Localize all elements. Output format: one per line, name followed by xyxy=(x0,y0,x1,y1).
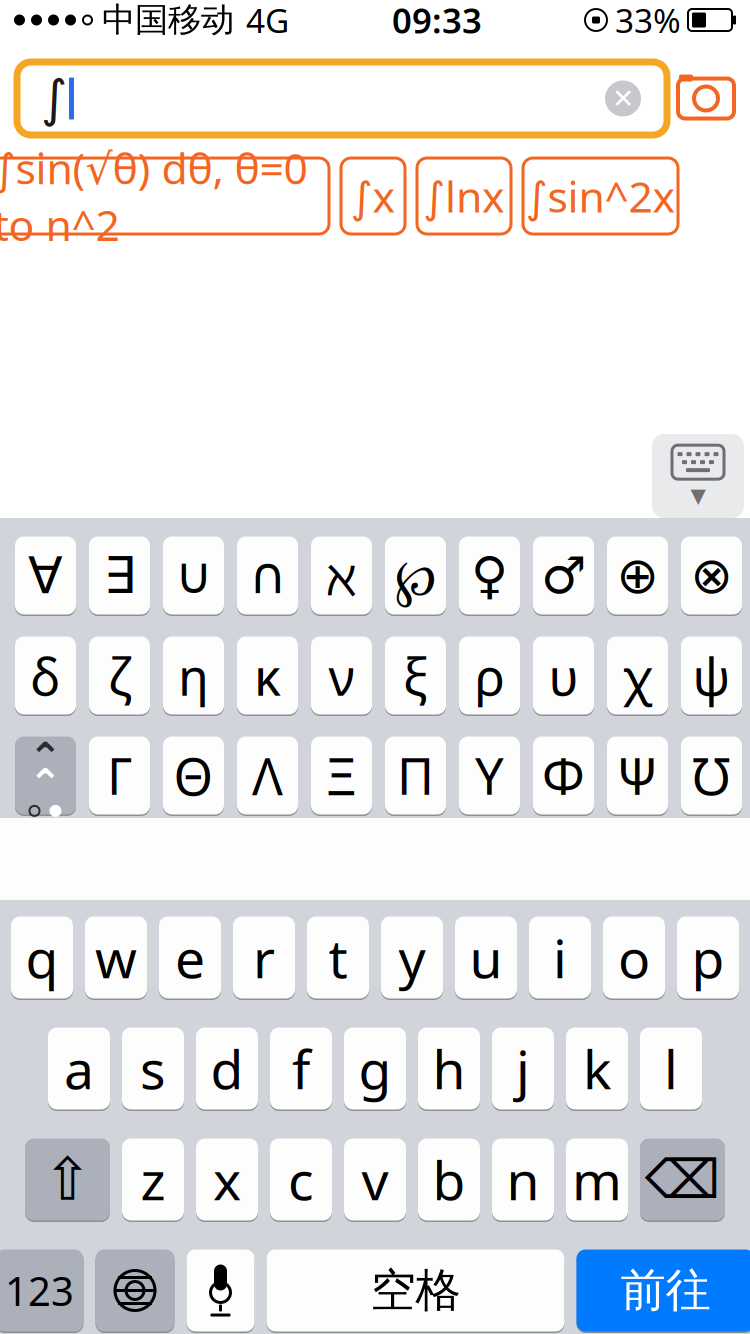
button[interactable]: q xyxy=(11,915,73,1000)
staticText: ∫sin^2x xyxy=(525,168,675,224)
button[interactable]: m xyxy=(566,1137,628,1222)
button[interactable]: Ʊ xyxy=(681,735,742,816)
button[interactable]: b xyxy=(418,1137,480,1222)
button[interactable]: ψ xyxy=(681,635,742,716)
button[interactable]: Φ xyxy=(533,735,594,816)
button[interactable]: Delete xyxy=(640,1137,725,1222)
button[interactable]: Ψ xyxy=(607,735,668,816)
button[interactable]: ∫lnx xyxy=(417,158,511,234)
button[interactable]: κ xyxy=(237,635,298,716)
button[interactable]: ξ xyxy=(385,635,446,716)
staticText: n xyxy=(506,1144,539,1215)
staticText: Υ xyxy=(475,742,504,809)
button[interactable]: More symbols xyxy=(15,735,76,816)
staticText: 33% xyxy=(615,0,681,42)
button[interactable]: u xyxy=(455,915,517,1000)
button[interactable]: ∫ xyxy=(17,62,667,135)
button[interactable]: f xyxy=(270,1026,332,1111)
staticText: r xyxy=(253,922,275,993)
button[interactable]: k xyxy=(566,1026,628,1111)
button[interactable]: ∪ xyxy=(163,535,224,616)
button[interactable]: p xyxy=(677,915,739,1000)
staticText: Θ xyxy=(173,742,213,809)
button[interactable]: d xyxy=(196,1026,258,1111)
button[interactable]: Π xyxy=(385,735,446,816)
staticText: c xyxy=(288,1144,314,1215)
staticText: ⌃ xyxy=(28,760,62,806)
button[interactable]: s xyxy=(122,1026,184,1111)
button[interactable]: j xyxy=(492,1026,554,1111)
button[interactable]: 前往 xyxy=(576,1248,750,1333)
staticText: l xyxy=(664,1033,678,1104)
button[interactable]: ♀ xyxy=(459,535,520,616)
button[interactable]: i xyxy=(529,915,591,1000)
button[interactable]: ∃ xyxy=(89,535,150,616)
button[interactable]: z xyxy=(122,1137,184,1222)
button[interactable]: ∀ xyxy=(15,535,76,616)
staticText: Ψ xyxy=(616,742,658,809)
button[interactable]: o xyxy=(603,915,665,1000)
button[interactable]: ⊕ xyxy=(607,535,668,616)
staticText: ∀ xyxy=(28,547,63,604)
button[interactable]: Shift xyxy=(25,1137,110,1222)
staticText: ▼ xyxy=(690,484,705,507)
staticText: υ xyxy=(548,642,578,709)
button[interactable]: Γ xyxy=(89,735,150,816)
button[interactable]: h xyxy=(418,1026,480,1111)
button[interactable]: Υ xyxy=(459,735,520,816)
staticText: ∫ xyxy=(41,70,67,127)
button[interactable]: δ xyxy=(15,635,76,716)
button[interactable]: t xyxy=(307,915,369,1000)
button[interactable]: x xyxy=(196,1137,258,1222)
button[interactable]: Θ xyxy=(163,735,224,816)
button[interactable]: 123 xyxy=(0,1248,83,1333)
button[interactable]: ∫sin^2x xyxy=(523,158,678,234)
button[interactable]: ∫sin(√θ) dθ, θ=0 to n^2 xyxy=(0,158,329,234)
button[interactable]: c xyxy=(270,1137,332,1222)
staticText: w xyxy=(95,922,137,993)
staticText: ⌫ xyxy=(645,1149,720,1210)
staticText: 前往 xyxy=(620,1263,710,1318)
button[interactable]: w xyxy=(85,915,147,1000)
button[interactable]: ρ xyxy=(459,635,520,716)
staticText: ∫sin(√θ) dθ, θ=0 to n^2 xyxy=(0,139,307,253)
button[interactable]: χ xyxy=(607,635,668,716)
button[interactable]: r xyxy=(233,915,295,1000)
button[interactable]: l xyxy=(640,1026,702,1111)
button[interactable]: v xyxy=(344,1137,406,1222)
staticText: b xyxy=(432,1144,465,1215)
button[interactable]: n xyxy=(492,1137,554,1222)
staticText: a xyxy=(64,1033,94,1104)
button[interactable]: ζ xyxy=(89,635,150,716)
button[interactable]: a xyxy=(48,1026,110,1111)
button[interactable]: Camera search xyxy=(675,73,737,123)
button[interactable]: e xyxy=(159,915,221,1000)
button[interactable]: Hide keyboard xyxy=(652,434,744,518)
button[interactable]: Ξ xyxy=(311,735,372,816)
staticText: d xyxy=(210,1033,243,1104)
staticText: Φ xyxy=(542,742,585,809)
staticText: f xyxy=(292,1033,310,1104)
button[interactable]: ℵ xyxy=(311,535,372,616)
button[interactable]: ∫x xyxy=(341,158,405,234)
staticText: ⊗ xyxy=(690,547,732,604)
button[interactable]: υ xyxy=(533,635,594,716)
button[interactable]: y xyxy=(381,915,443,1000)
button[interactable]: 空格 xyxy=(266,1248,564,1333)
staticText: ξ xyxy=(403,642,428,709)
button[interactable]: ∩ xyxy=(237,535,298,616)
button[interactable]: Λ xyxy=(237,735,298,816)
button[interactable]: Dictation xyxy=(186,1248,254,1333)
staticText: i xyxy=(553,922,567,993)
button[interactable]: g xyxy=(344,1026,406,1111)
button[interactable]: Next keyboard xyxy=(95,1248,174,1333)
staticText: Ʊ xyxy=(691,742,731,809)
staticText: η xyxy=(178,642,209,709)
button[interactable]: ♂ xyxy=(533,535,594,616)
button[interactable]: η xyxy=(163,635,224,716)
button[interactable]: ⊗ xyxy=(681,535,742,616)
button[interactable]: ν xyxy=(311,635,372,716)
button[interactable]: ℘ xyxy=(385,535,446,616)
